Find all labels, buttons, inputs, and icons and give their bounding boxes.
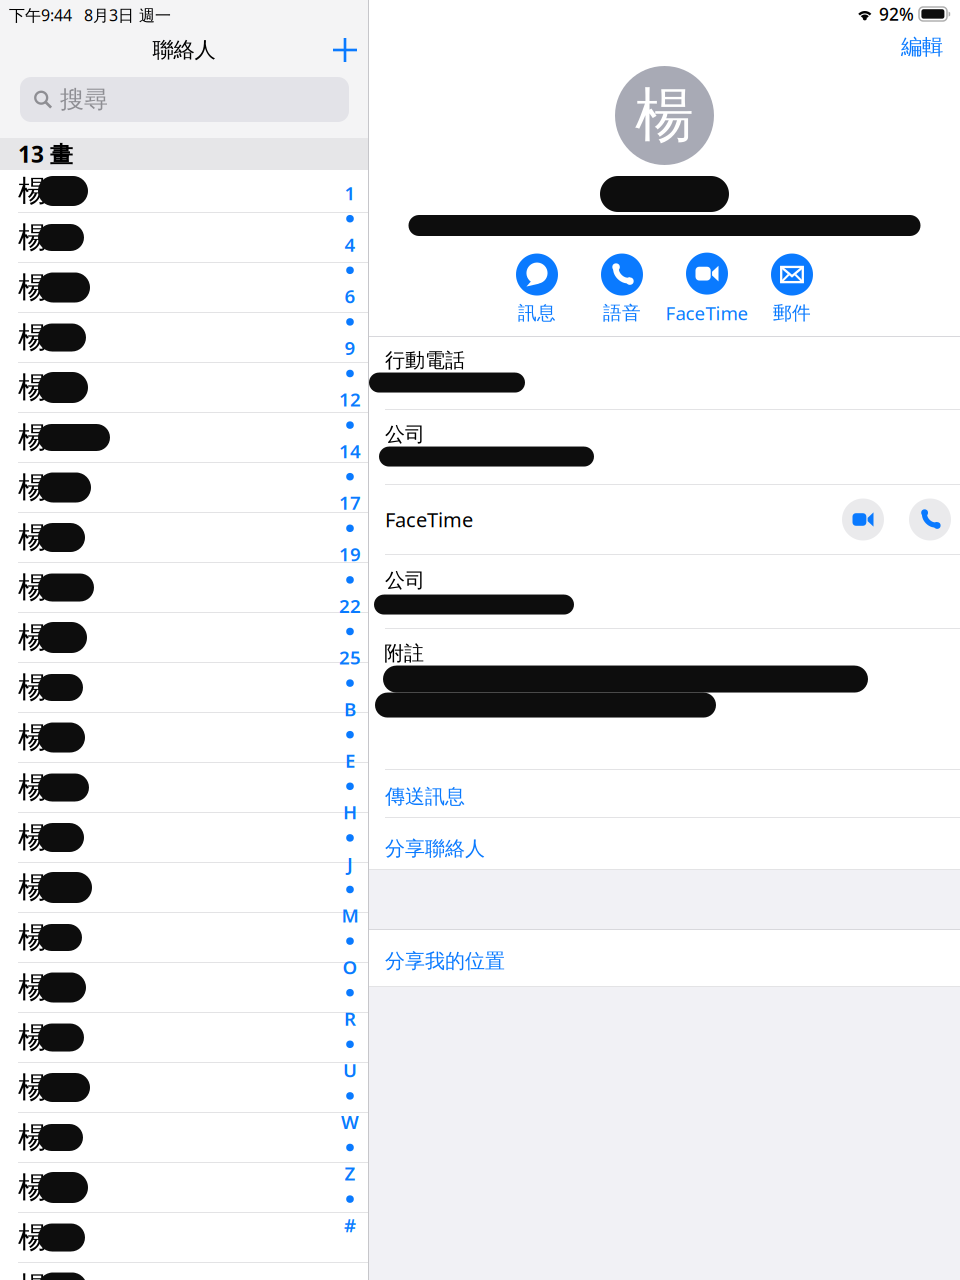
staticText: U	[343, 1058, 357, 1082]
button[interactable]: 楊	[0, 263, 368, 313]
staticText: 公司	[385, 568, 425, 593]
button[interactable]: 語音	[579, 256, 664, 322]
button[interactable]: 編輯	[884, 28, 960, 66]
staticText: J	[347, 851, 353, 876]
button[interactable]: 楊	[0, 1013, 368, 1063]
staticText: #	[344, 1212, 356, 1237]
staticText: 92%	[879, 2, 914, 25]
staticText: 12	[339, 387, 361, 412]
button[interactable]: Section index	[337, 180, 363, 1238]
staticText: 楊	[18, 469, 47, 505]
button[interactable]: FaceTime video	[842, 498, 884, 540]
button[interactable]: 楊	[0, 763, 368, 813]
staticText: B	[344, 696, 356, 721]
button[interactable]: 楊	[0, 170, 368, 213]
button[interactable]: 楊	[0, 713, 368, 763]
staticText: 下午9:44 8月3日 週一	[9, 4, 171, 26]
staticText: 楊	[18, 1019, 47, 1055]
staticText: 楊	[18, 669, 47, 705]
staticText: 楊	[18, 719, 47, 755]
button[interactable]: 郵件	[749, 256, 834, 322]
button[interactable]: 楊	[0, 313, 368, 363]
staticText: FaceTime	[385, 506, 473, 533]
staticText: 22	[339, 593, 361, 618]
staticText: 楊	[18, 519, 47, 555]
button[interactable]: 楊	[0, 1213, 368, 1263]
button[interactable]: 楊	[0, 1113, 368, 1163]
button[interactable]: 楊	[0, 1063, 368, 1113]
staticText: M	[341, 903, 358, 928]
staticText: 楊	[18, 569, 47, 605]
staticText: 楊	[18, 419, 47, 455]
button[interactable]: 楊	[0, 963, 368, 1013]
staticText: 9	[344, 335, 355, 360]
staticText: H	[343, 800, 357, 824]
button[interactable]: 楊	[0, 563, 368, 613]
button[interactable]: 楊	[0, 413, 368, 463]
staticText: 14	[339, 438, 361, 463]
staticText: 楊	[18, 369, 47, 405]
staticText: 楊	[18, 219, 47, 255]
staticText: 19	[339, 542, 361, 566]
staticText: R	[344, 1006, 356, 1031]
staticText: 分享聯絡人	[385, 836, 485, 861]
staticText: 分享我的位置	[385, 949, 505, 973]
staticText: 楊	[18, 819, 47, 855]
button[interactable]: 楊	[0, 813, 368, 863]
button[interactable]: 傳送訊息	[369, 770, 960, 818]
staticText: 聯絡人	[152, 37, 215, 63]
button[interactable]: 楊	[0, 363, 368, 413]
staticText: Z	[344, 1161, 355, 1186]
button[interactable]: Add contact	[322, 28, 368, 72]
staticText: E	[345, 748, 355, 773]
staticText: FaceTime	[665, 301, 748, 325]
staticText: 1	[344, 180, 355, 205]
staticText: 楊	[18, 1169, 47, 1205]
button[interactable]: 分享我的位置	[369, 930, 960, 987]
button[interactable]: 公司	[369, 555, 960, 629]
button[interactable]: 訊息	[494, 256, 579, 322]
staticText: 訊息	[518, 301, 556, 324]
button[interactable]: 楊	[0, 913, 368, 963]
staticText: W	[341, 1109, 359, 1134]
button[interactable]: FaceTime	[664, 256, 749, 322]
staticText: 楊	[18, 269, 47, 305]
staticText: 楊	[18, 969, 47, 1005]
button[interactable]: 楊	[0, 1163, 368, 1213]
button[interactable]: 楊	[0, 463, 368, 513]
button[interactable]: 楊	[0, 613, 368, 663]
button[interactable]: 楊	[0, 513, 368, 563]
staticText: 楊	[18, 769, 47, 805]
staticText: 郵件	[773, 301, 811, 324]
staticText: 語音	[603, 301, 641, 324]
staticText: 4	[344, 232, 355, 257]
staticText: 6	[344, 284, 355, 308]
staticText: 楊	[635, 79, 694, 152]
staticText: 楊	[18, 869, 47, 905]
staticText: 25	[339, 645, 361, 670]
button[interactable]: 搜尋	[20, 77, 349, 122]
button[interactable]: FaceTime audio	[909, 498, 951, 540]
staticText: 附註	[384, 641, 424, 666]
staticText: 楊	[18, 319, 47, 355]
staticText: 楊	[18, 1269, 47, 1280]
staticText: 楊	[18, 919, 47, 955]
button[interactable]: 附註	[369, 629, 960, 770]
staticText: 13 畫	[18, 139, 73, 169]
staticText: 楊	[18, 1219, 47, 1255]
button[interactable]: 楊	[0, 213, 368, 263]
button[interactable]: 行動電話	[369, 337, 960, 410]
staticText: 楊	[18, 619, 47, 655]
staticText: 公司	[385, 422, 425, 447]
button[interactable]: 楊	[0, 1263, 368, 1280]
staticText: 楊	[18, 1119, 47, 1155]
staticText: 傳送訊息	[385, 784, 465, 809]
staticText: 楊	[18, 1069, 47, 1105]
button[interactable]: 楊	[0, 863, 368, 913]
staticText: 楊	[18, 173, 47, 209]
staticText: 搜尋	[60, 85, 108, 114]
button[interactable]: 分享聯絡人	[369, 818, 960, 870]
button[interactable]: 楊	[0, 663, 368, 713]
button[interactable]: 公司	[369, 410, 960, 485]
staticText: 17	[339, 490, 361, 515]
